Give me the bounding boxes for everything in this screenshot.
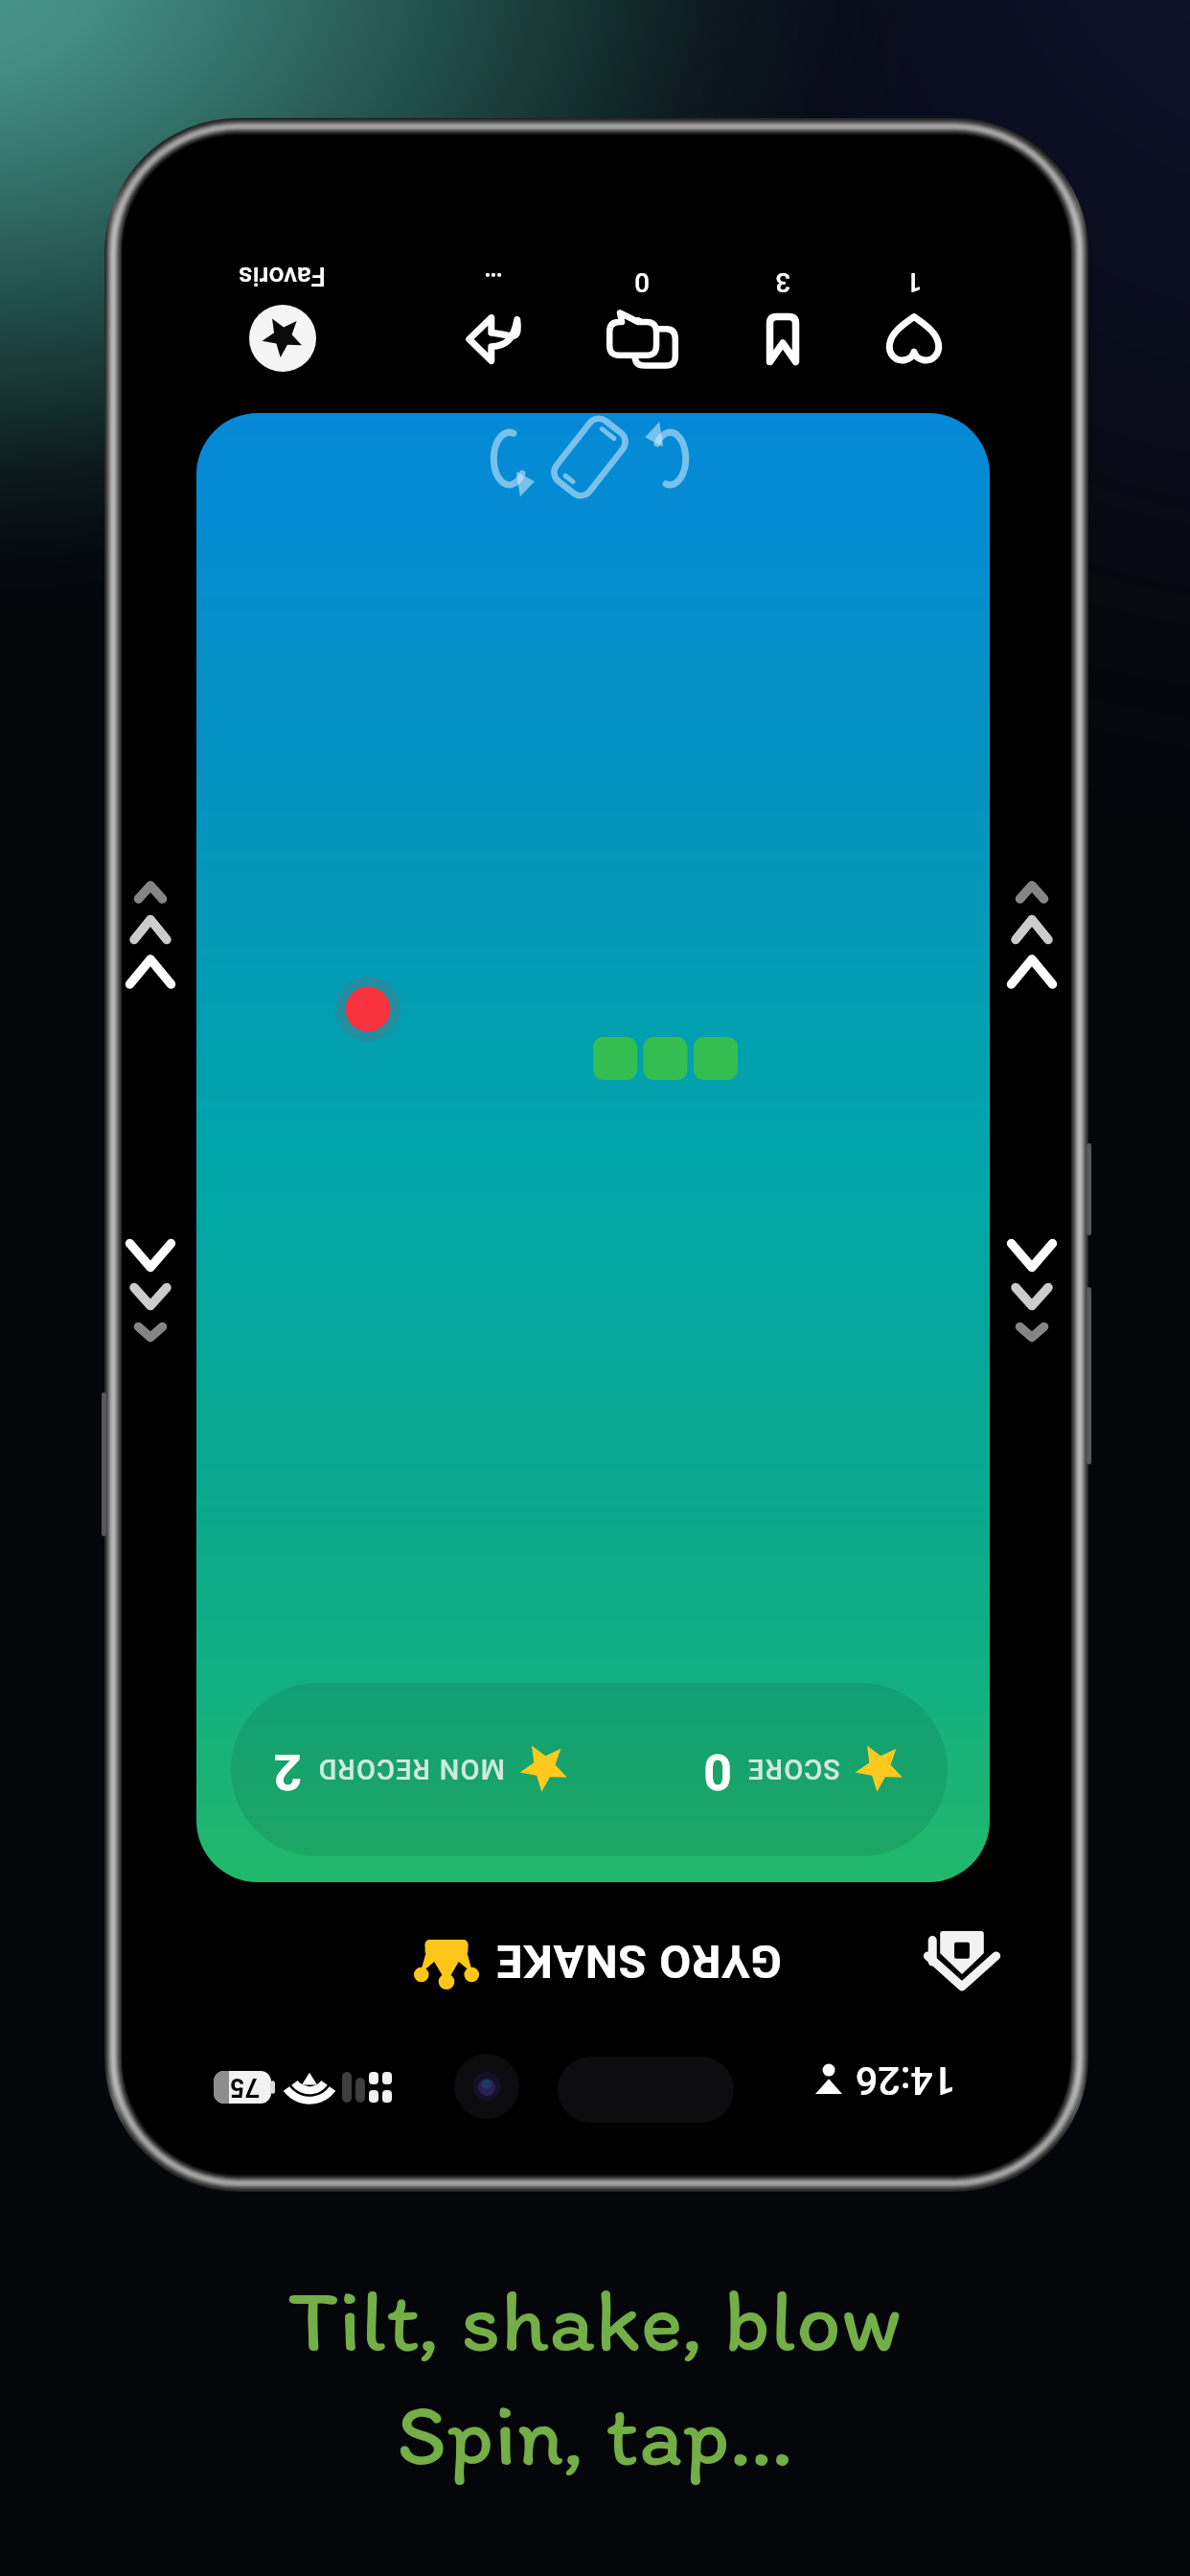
- staticText: 14:26: [855, 2058, 955, 2104]
- button[interactable]: Favoris: [216, 261, 350, 372]
- button[interactable]: Action 1: [847, 266, 981, 369]
- staticText: Spin, tap…: [0, 2380, 1190, 2488]
- button[interactable]: Action …: [426, 266, 561, 369]
- button[interactable]: Action 0: [575, 266, 709, 369]
- staticText: Favoris: [239, 261, 326, 292]
- button[interactable]: Game board: [196, 413, 990, 1882]
- staticText: …: [484, 266, 503, 298]
- staticText: 75: [230, 2072, 260, 2103]
- staticText: MON RECORD: [317, 1753, 505, 1785]
- staticText: SCORE: [747, 1753, 840, 1785]
- button[interactable]: Save: [918, 1916, 1006, 2004]
- staticText: 3: [775, 266, 790, 298]
- staticText: Tilt, shake, blow: [0, 2266, 1190, 2374]
- staticText: GYRO SNAKE: [496, 1935, 782, 1989]
- staticText: 0: [634, 266, 650, 298]
- staticText: 1: [906, 266, 922, 298]
- staticText: 2: [273, 1742, 302, 1801]
- staticText: 0: [703, 1742, 732, 1801]
- button[interactable]: Action 3: [716, 266, 850, 369]
